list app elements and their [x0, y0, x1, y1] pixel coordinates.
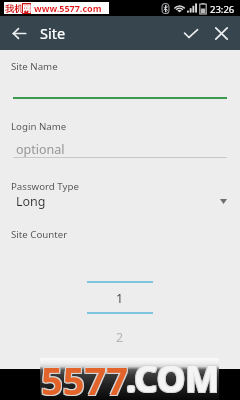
staticText: Site: [40, 23, 66, 43]
staticText: .COM: [127, 355, 221, 400]
staticText: 5577: [40, 355, 127, 400]
staticText: Login Name: [11, 120, 67, 133]
staticText: 5577: [42, 355, 129, 400]
button[interactable]: Back: [5, 19, 33, 47]
staticText: 我机: [5, 3, 23, 14]
staticText: 5577: [41, 354, 128, 400]
staticText: www.5577.com: [34, 2, 102, 14]
button[interactable]: Long: [0, 192, 240, 210]
staticText: .COM: [125, 355, 219, 400]
staticText: 1: [116, 290, 124, 307]
staticText: Site Name: [11, 60, 58, 73]
button[interactable]: 1: [87, 281, 153, 314]
staticText: 5577: [40, 353, 127, 400]
staticText: 23:26: [210, 3, 235, 16]
staticText: Site Counter: [11, 228, 68, 241]
button[interactable]: Cancel: [207, 19, 235, 47]
staticText: Password Type: [11, 180, 79, 193]
staticText: .COM: [127, 353, 221, 400]
staticText: 2: [116, 329, 124, 346]
staticText: .COM: [126, 354, 220, 400]
button[interactable]: Save: [177, 19, 205, 47]
staticText: .COM: [125, 353, 219, 400]
staticText: Long: [16, 193, 46, 210]
staticText: 网: [22, 3, 31, 14]
staticText: optional: [16, 141, 65, 158]
button[interactable]: 2: [87, 314, 153, 358]
staticText: 5577: [42, 353, 129, 400]
